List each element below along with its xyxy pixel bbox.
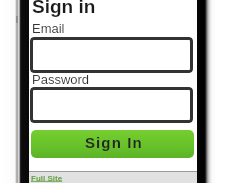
staticText: Password (32, 72, 90, 87)
button[interactable]: Email field (30, 37, 193, 73)
button[interactable]: Sign In (31, 130, 194, 158)
button[interactable]: Full Site (31, 174, 63, 183)
staticText: Email (32, 21, 65, 36)
staticText: Sign in (32, 0, 96, 17)
button[interactable]: Password field (30, 87, 193, 123)
staticText: Sign In (85, 134, 143, 151)
